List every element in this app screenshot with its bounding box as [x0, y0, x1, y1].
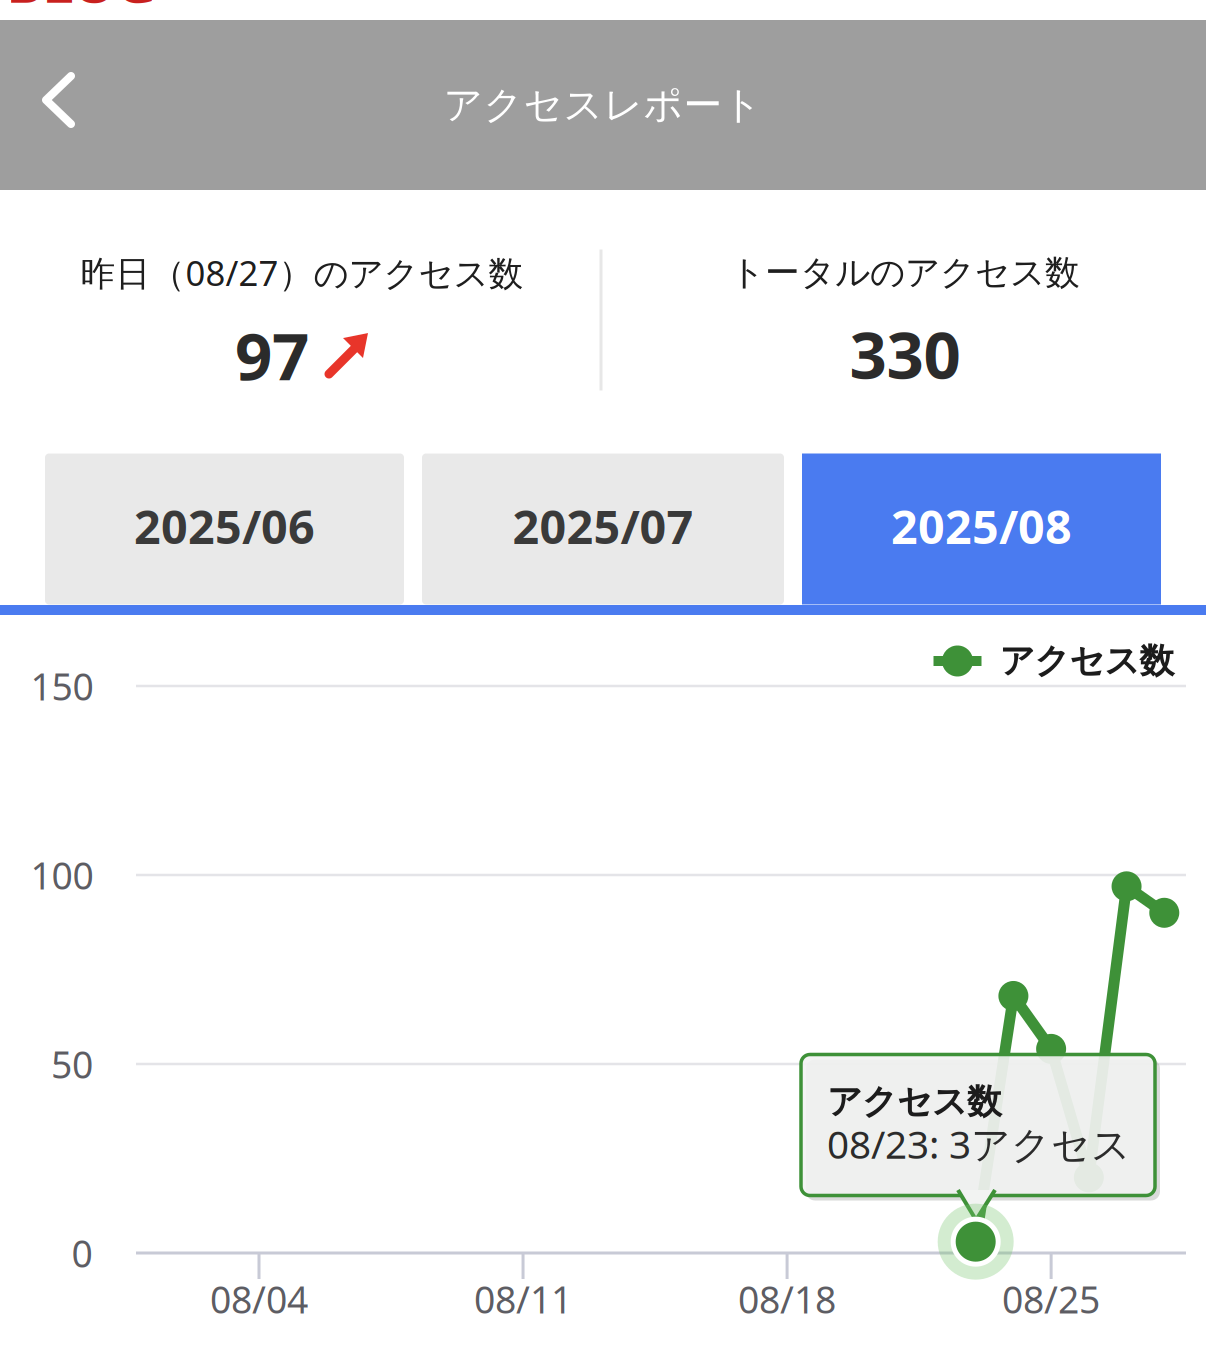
staticText: アクセスレポート: [443, 81, 762, 129]
staticText: 2025/06: [134, 495, 315, 557]
staticText: 50: [51, 1039, 93, 1089]
staticText: トータルのアクセス数: [730, 251, 1080, 294]
staticText: 97: [235, 312, 309, 398]
staticText: アクセス数: [999, 640, 1174, 682]
staticText: アクセス数: [827, 1080, 1002, 1123]
staticText: BLOG: [7, 0, 155, 17]
button[interactable]: 2025/06: [45, 453, 404, 604]
staticText: 08/18: [738, 1274, 836, 1324]
staticText: 2025/08: [891, 495, 1072, 557]
button[interactable]: 2025/08: [802, 453, 1161, 604]
button[interactable]: Back: [0, 33, 105, 177]
staticText: 08/04: [210, 1274, 308, 1324]
staticText: 08/25: [1002, 1274, 1100, 1324]
staticText: 2025/07: [512, 495, 693, 557]
staticText: 100: [30, 850, 93, 900]
staticText: 0: [71, 1228, 92, 1278]
staticText: 昨日（08/27）のアクセス数: [80, 250, 523, 296]
button[interactable]: 2025/07: [422, 453, 784, 604]
staticText: 08/23: 3アクセス: [827, 1118, 1131, 1169]
staticText: 08/11: [474, 1274, 572, 1324]
staticText: 330: [849, 310, 960, 397]
staticText: 150: [30, 661, 93, 711]
